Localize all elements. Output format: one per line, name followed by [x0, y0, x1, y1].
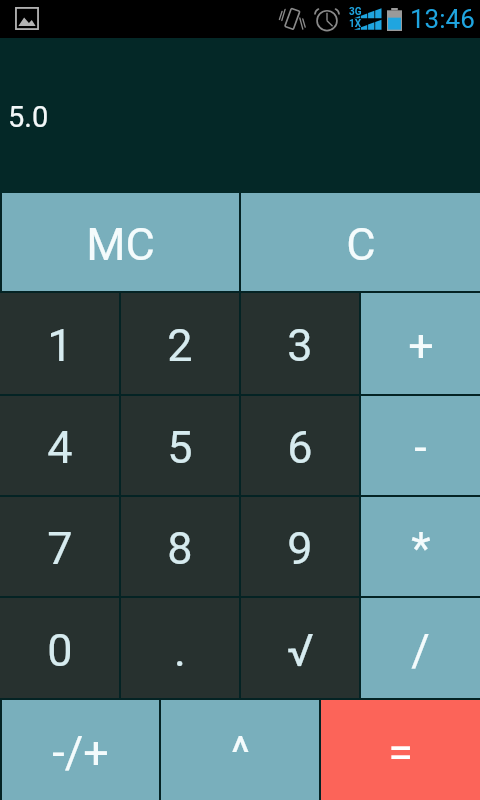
staticText: ^	[231, 726, 250, 779]
button[interactable]: 6	[241, 396, 359, 495]
staticText: 13:46	[410, 4, 475, 34]
button[interactable]: -/+	[2, 700, 159, 800]
staticText: 5.0	[8, 100, 49, 134]
button[interactable]: /	[361, 598, 480, 698]
button[interactable]: C	[241, 193, 480, 291]
button[interactable]: 0	[0, 598, 119, 698]
button[interactable]: .	[121, 598, 239, 698]
button[interactable]: 4	[0, 396, 119, 495]
button[interactable]: +	[361, 293, 480, 394]
staticText: 5	[167, 421, 193, 474]
staticText: √	[287, 624, 314, 677]
staticText: *	[411, 522, 431, 575]
staticText: 7	[47, 522, 73, 575]
staticText: 0	[47, 624, 73, 677]
staticText: =	[388, 726, 413, 779]
staticText: .	[174, 624, 186, 677]
staticText: 1	[47, 319, 73, 372]
staticText: 3G	[349, 6, 362, 18]
button[interactable]: -	[361, 396, 480, 495]
button[interactable]: =	[321, 700, 480, 800]
button[interactable]: 9	[241, 497, 359, 596]
staticText: 8	[167, 522, 193, 575]
button[interactable]: √	[241, 598, 359, 698]
button[interactable]: *	[361, 497, 480, 596]
other: Photo notification	[15, 7, 39, 30]
button[interactable]: 3	[241, 293, 359, 394]
staticText: 3	[287, 319, 313, 372]
button[interactable]: 5	[121, 396, 239, 495]
staticText: 1X	[349, 18, 362, 30]
staticText: /	[411, 624, 430, 677]
staticText: 4	[47, 421, 73, 474]
button[interactable]: MC	[2, 193, 239, 291]
button[interactable]: 8	[121, 497, 239, 596]
staticText: -/+	[52, 726, 109, 779]
button[interactable]: 2	[121, 293, 239, 394]
staticText: +	[408, 319, 434, 372]
staticText: C	[346, 218, 376, 271]
staticText: 9	[287, 522, 313, 575]
button[interactable]: 7	[0, 497, 119, 596]
staticText: 2	[167, 319, 193, 372]
staticText: -	[414, 421, 427, 474]
staticText: MC	[86, 218, 155, 271]
button[interactable]: 1	[0, 293, 119, 394]
staticText: 6	[287, 421, 313, 474]
button[interactable]: ^	[161, 700, 319, 800]
